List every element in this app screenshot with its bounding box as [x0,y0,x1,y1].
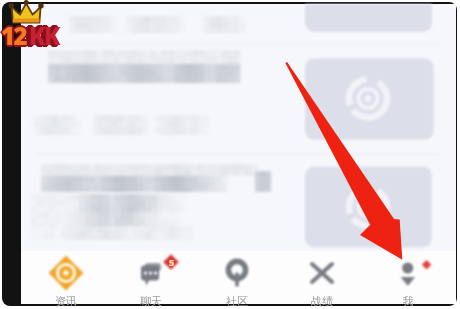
button[interactable]: 战绩 [280,251,364,304]
staticText: 12KK [2,18,57,51]
button[interactable] [21,44,456,156]
staticText: 12KK [1,21,56,54]
button[interactable]: 资讯 [24,251,108,304]
staticText: 聊天 [109,294,193,308]
staticText: 社区 [195,294,279,308]
staticText: 资讯 [24,294,108,308]
staticText: 12KK [0,19,55,52]
staticText: 12KK [1,18,56,51]
staticText: 我 [366,294,450,308]
staticText: 12KK [2,20,57,53]
button[interactable]: 5 [109,251,193,304]
staticText: 12KK [1,20,56,53]
staticText: 12KK [1,17,56,50]
staticText: 12KK [0,18,55,51]
button[interactable]: 社区 [195,251,279,304]
staticText: KK [29,19,59,52]
staticText: 12KK [0,19,54,52]
staticText: 12 [1,19,26,52]
staticText: 战绩 [280,294,364,308]
staticText: 12KK [0,20,55,53]
button[interactable]: 我 [366,251,450,304]
staticText: 5 [169,256,175,268]
staticText: 12KK [3,19,58,52]
button[interactable] [21,4,456,44]
button[interactable] [21,156,456,251]
staticText: 12KK [2,19,57,52]
